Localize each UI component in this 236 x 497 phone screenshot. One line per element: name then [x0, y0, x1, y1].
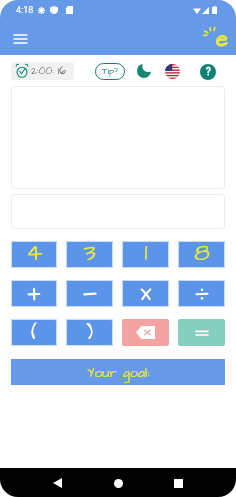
button[interactable]: multiply — [122, 280, 169, 307]
staticText: e — [216, 23, 228, 51]
button[interactable]: Menu — [6, 25, 34, 53]
button[interactable]: ( — [11, 319, 57, 346]
button[interactable]: Dark mode — [136, 63, 152, 79]
button[interactable]: Language — [164, 63, 181, 80]
button[interactable]: 3 — [66, 241, 113, 268]
staticText: 4 — [26, 241, 43, 263]
button[interactable]: Your goal: — [11, 359, 225, 385]
staticText: Tip? — [102, 65, 119, 78]
staticText: 4:18 — [16, 5, 34, 16]
button[interactable]: Tip? — [95, 63, 125, 80]
button[interactable]: plus — [11, 280, 57, 307]
button[interactable]: divide — [178, 280, 225, 307]
button[interactable]: minus — [66, 280, 113, 307]
button[interactable]: Equals — [178, 319, 225, 346]
staticText: 8 — [194, 241, 210, 263]
button[interactable]: Backspace — [122, 319, 169, 346]
button[interactable]: Help — [199, 63, 216, 80]
staticText: 2:00: 16 — [31, 64, 66, 79]
staticText: Your goal: — [87, 363, 150, 382]
button[interactable]: 8 — [178, 241, 225, 268]
button[interactable]: 2:00: 16 — [11, 62, 74, 80]
staticText: ) — [86, 320, 93, 346]
button[interactable] — [11, 194, 225, 229]
staticText: 3 — [83, 241, 96, 263]
button[interactable]: Logo — [202, 25, 230, 53]
staticText: 1 — [144, 241, 148, 263]
staticText: ( — [31, 320, 37, 346]
button[interactable]: Home — [107, 472, 129, 494]
button[interactable]: Back — [46, 472, 68, 494]
button[interactable]: 1 — [122, 241, 169, 268]
staticText: ? — [206, 66, 211, 78]
button[interactable]: Recents — [167, 472, 189, 494]
button[interactable]: 4 — [11, 241, 57, 268]
button[interactable]: ) — [66, 319, 113, 346]
